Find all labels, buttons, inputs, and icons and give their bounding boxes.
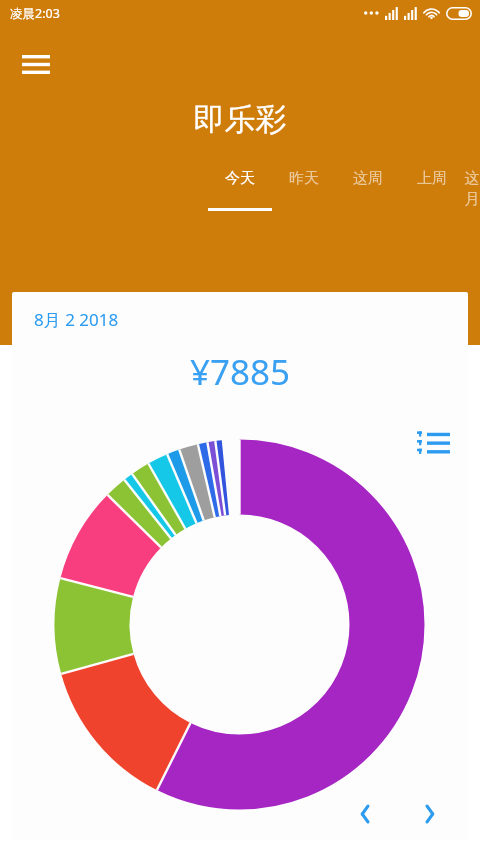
staticText: 即乐彩 <box>0 100 480 139</box>
staticText: 这月 <box>464 169 480 209</box>
button[interactable]: 这周 <box>336 169 400 225</box>
button[interactable]: 上周 <box>400 169 464 225</box>
staticText: ¥7885 <box>12 348 468 396</box>
button[interactable]: Show list view <box>416 430 450 456</box>
button[interactable]: Next <box>410 794 450 834</box>
staticText: 上周 <box>417 169 447 188</box>
button[interactable]: 今天 <box>208 169 272 225</box>
staticText: 8月 2 2018 <box>34 308 119 331</box>
staticText: 昨天 <box>289 169 319 188</box>
button[interactable]: 这月 <box>464 169 480 225</box>
staticText: 今天 <box>225 169 255 188</box>
button[interactable]: Previous <box>345 794 385 834</box>
staticText: 凌晨2:03 <box>10 5 60 22</box>
button[interactable]: Open navigation menu <box>14 42 58 86</box>
button[interactable]: 昨天 <box>272 169 336 225</box>
staticText: 这周 <box>353 169 383 188</box>
